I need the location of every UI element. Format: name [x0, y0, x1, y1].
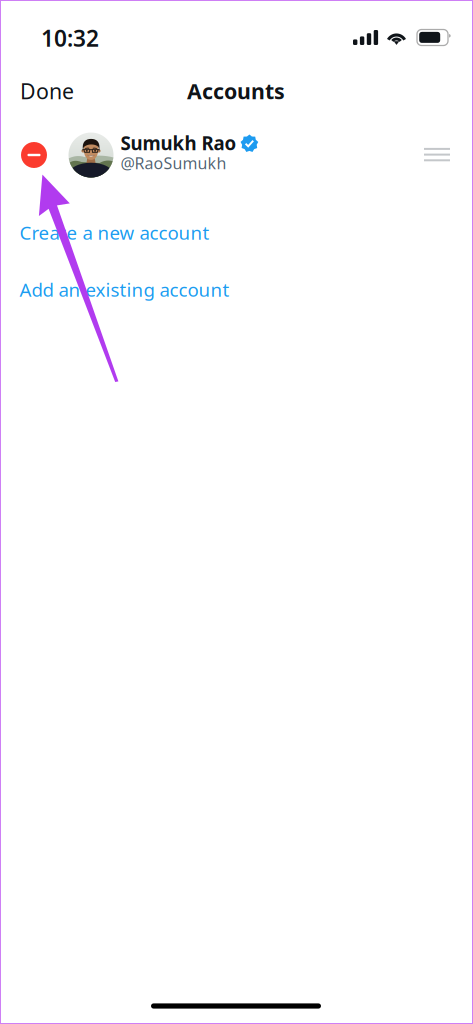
button[interactable]: Create a new account — [0, 210, 473, 254]
button[interactable]: Add an existing account — [0, 267, 473, 311]
staticText: @RaoSumukh — [120, 152, 226, 174]
button[interactable]: Remove account — [12, 133, 56, 177]
staticText: Create a new account — [19, 220, 209, 245]
staticText: Accounts — [187, 77, 285, 105]
staticText: Add an existing account — [19, 277, 229, 302]
staticText: Done — [20, 77, 74, 105]
staticText: Sumukh Rao — [120, 131, 236, 155]
button[interactable]: Done — [0, 69, 90, 113]
staticText: 10:32 — [41, 23, 99, 53]
button[interactable]: Reorder account — [415, 133, 459, 177]
button[interactable]: Sumukh Rao — [64, 125, 364, 185]
